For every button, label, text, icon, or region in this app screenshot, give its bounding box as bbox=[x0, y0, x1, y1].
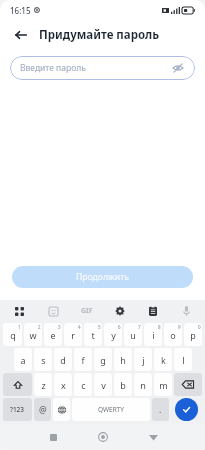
button[interactable]: GIF bbox=[78, 302, 96, 320]
staticText: c bbox=[81, 379, 86, 391]
button[interactable]: QWERTY bbox=[72, 398, 150, 421]
staticText: y bbox=[111, 329, 116, 341]
staticText: 0 bbox=[198, 324, 201, 330]
staticText: 8 bbox=[158, 324, 161, 330]
staticText: d bbox=[60, 354, 66, 366]
button[interactable]: o bbox=[164, 323, 182, 346]
staticText: QWERTY bbox=[98, 405, 125, 414]
button[interactable]: t bbox=[84, 323, 102, 346]
button[interactable]: w bbox=[24, 323, 42, 346]
button[interactable]: n bbox=[134, 373, 152, 396]
staticText: Продолжить bbox=[76, 271, 129, 283]
staticText: 6 bbox=[118, 324, 121, 330]
button[interactable]: x bbox=[54, 373, 72, 396]
staticText: 16:15 bbox=[10, 5, 31, 16]
button[interactable]: Show password bbox=[171, 61, 185, 75]
staticText: s bbox=[41, 354, 46, 366]
button[interactable]: Back bbox=[12, 26, 30, 44]
button[interactable]: . bbox=[152, 398, 169, 421]
staticText: i bbox=[152, 329, 155, 341]
staticText: @ bbox=[39, 404, 47, 416]
button[interactable]: Change language bbox=[53, 398, 70, 421]
button[interactable]: Home bbox=[93, 427, 113, 447]
button[interactable]: @ bbox=[34, 398, 51, 421]
staticText: x bbox=[61, 379, 66, 391]
staticText: Придумайте пароль bbox=[39, 27, 160, 43]
staticText: t bbox=[91, 329, 95, 341]
button[interactable]: Back bbox=[143, 427, 163, 447]
staticText: n bbox=[140, 379, 146, 391]
staticText: r bbox=[71, 329, 75, 341]
staticText: w bbox=[29, 329, 37, 341]
button[interactable]: Введите пароль bbox=[10, 56, 195, 80]
button[interactable]: y bbox=[104, 323, 122, 346]
staticText: z bbox=[41, 379, 46, 391]
staticText: ?123 bbox=[10, 405, 25, 414]
button[interactable]: a bbox=[14, 348, 32, 371]
staticText: 2 bbox=[38, 324, 41, 330]
staticText: b bbox=[120, 379, 126, 391]
button[interactable]: h bbox=[114, 348, 132, 371]
staticText: f bbox=[81, 354, 85, 366]
button[interactable]: v bbox=[94, 373, 112, 396]
staticText: q bbox=[10, 329, 16, 341]
staticText: e bbox=[50, 329, 56, 341]
staticText: k bbox=[161, 354, 166, 366]
staticText: . bbox=[159, 404, 162, 416]
staticText: m bbox=[159, 379, 168, 391]
button[interactable]: z bbox=[34, 373, 52, 396]
staticText: l bbox=[182, 354, 185, 366]
button[interactable]: u bbox=[124, 323, 142, 346]
staticText: v bbox=[101, 379, 106, 391]
button[interactable]: p bbox=[184, 323, 202, 346]
button[interactable]: Recent apps bbox=[43, 427, 63, 447]
button[interactable]: r bbox=[64, 323, 82, 346]
staticText: p bbox=[190, 329, 196, 341]
staticText: o bbox=[170, 329, 176, 341]
staticText: 1 bbox=[18, 324, 21, 330]
button[interactable]: i bbox=[144, 323, 162, 346]
button[interactable]: b bbox=[114, 373, 132, 396]
staticText: j bbox=[142, 354, 145, 366]
staticText: h bbox=[120, 354, 126, 366]
button[interactable]: c bbox=[74, 373, 92, 396]
button[interactable]: Продолжить bbox=[12, 266, 193, 288]
staticText: GIF bbox=[81, 306, 93, 316]
button[interactable]: Stickers bbox=[44, 302, 62, 320]
staticText: a bbox=[20, 354, 26, 366]
button[interactable]: Clipboard bbox=[144, 302, 162, 320]
staticText: 5 bbox=[98, 324, 101, 330]
staticText: u bbox=[130, 329, 136, 341]
button[interactable]: Settings bbox=[111, 302, 129, 320]
button[interactable]: g bbox=[94, 348, 112, 371]
button[interactable]: d bbox=[54, 348, 72, 371]
button[interactable]: Enter bbox=[175, 398, 198, 421]
button[interactable]: Shift bbox=[3, 373, 32, 396]
button[interactable]: j bbox=[134, 348, 152, 371]
button[interactable]: e bbox=[44, 323, 62, 346]
button[interactable]: k bbox=[154, 348, 172, 371]
button[interactable]: Voice input bbox=[177, 302, 195, 320]
button[interactable]: l bbox=[174, 348, 192, 371]
button[interactable]: f bbox=[74, 348, 92, 371]
button[interactable]: ?123 bbox=[3, 398, 32, 421]
staticText: 4 bbox=[78, 324, 81, 330]
staticText: 7 bbox=[138, 324, 141, 330]
staticText: g bbox=[100, 354, 106, 366]
staticText: 3 bbox=[58, 324, 61, 330]
button[interactable]: q bbox=[3, 323, 22, 346]
button[interactable]: m bbox=[154, 373, 172, 396]
button[interactable]: s bbox=[34, 348, 52, 371]
button[interactable]: Apps bbox=[10, 302, 28, 320]
staticText: 9 bbox=[178, 324, 181, 330]
button[interactable]: Backspace bbox=[174, 373, 202, 396]
staticText: Введите пароль bbox=[20, 62, 86, 74]
